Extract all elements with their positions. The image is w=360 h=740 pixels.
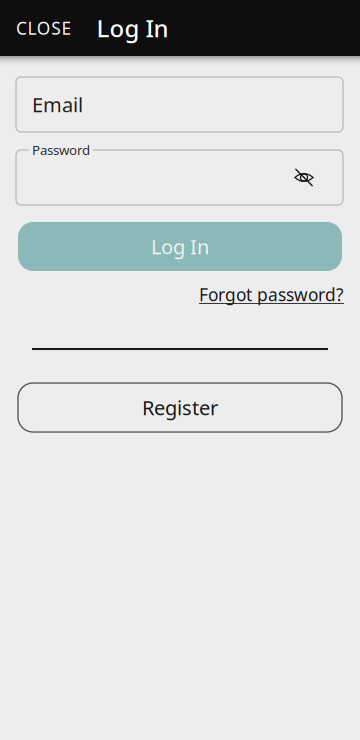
- button[interactable]: Password: [16, 150, 343, 205]
- button[interactable]: CLOSE: [0, 0, 97, 56]
- button[interactable]: Forgot password?: [199, 281, 360, 308]
- staticText: Forgot password?: [199, 283, 344, 306]
- staticText: CLOSE: [16, 16, 72, 39]
- button[interactable]: Log In: [18, 222, 342, 271]
- button[interactable]: Register: [18, 383, 342, 432]
- staticText: Password: [32, 141, 90, 159]
- button[interactable]: Email: [16, 77, 343, 132]
- button[interactable]: Log In: [97, 0, 169, 56]
- staticText: Email: [32, 91, 83, 118]
- staticText: Log In: [151, 233, 209, 260]
- staticText: Register: [142, 394, 218, 421]
- staticText: Log In: [97, 12, 169, 44]
